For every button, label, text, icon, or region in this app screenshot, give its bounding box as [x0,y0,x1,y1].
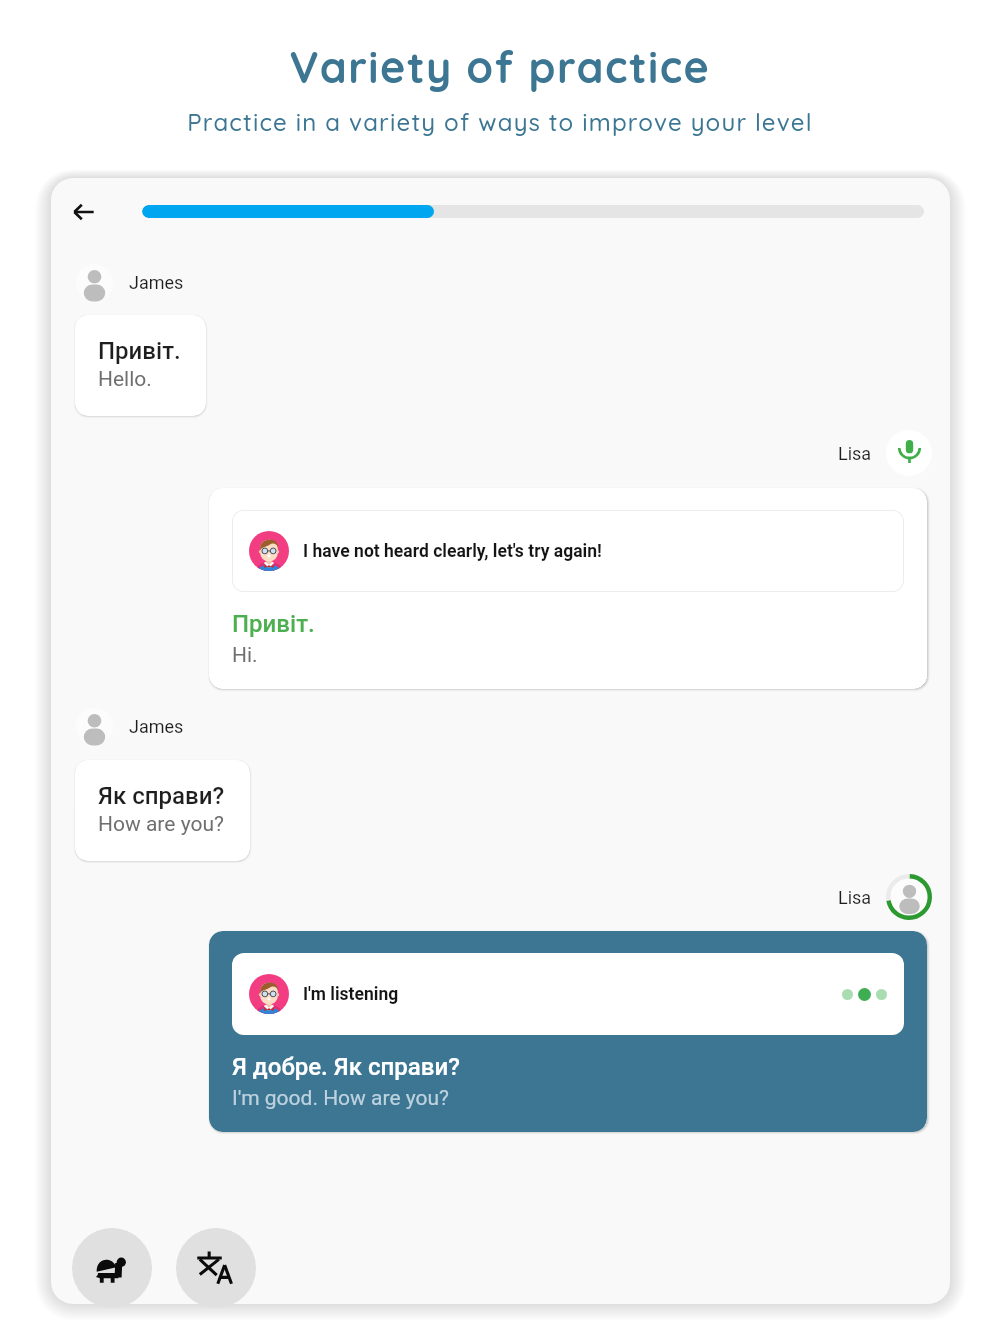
staticText: I'm listening [303,984,399,1005]
staticText: Hello. [98,367,152,392]
staticText: How are you? [98,812,224,837]
staticText: James [129,716,184,737]
button[interactable]: Привіт. [75,315,206,416]
staticText: Як справи? [98,782,225,810]
staticText: Practice in a variety of ways to improve… [0,107,1000,137]
staticText: I'm good. How are you? [232,1086,450,1111]
button[interactable]: Listening [886,874,932,920]
staticText: Variety of practice [0,40,1000,94]
staticText: James [129,272,184,293]
button[interactable]: Як справи? [75,760,250,861]
button[interactable]: Slow playback [72,1228,152,1308]
staticText: Lisa [838,887,872,908]
staticText: Я добре. Як справи? [232,1053,460,1081]
button[interactable]: Back [56,184,112,240]
button[interactable]: I'm listening [209,931,927,1132]
button[interactable]: Translate [176,1228,256,1308]
staticText: I have not heard clearly, let's try agai… [303,541,602,562]
staticText: Hi. [232,643,258,668]
staticText: Lisa [838,443,872,464]
button[interactable]: Record voice [886,430,932,476]
staticText: Привіт. [98,337,181,365]
button[interactable]: I have not heard clearly, let's try agai… [209,488,927,689]
staticText: Привіт. [232,610,315,638]
